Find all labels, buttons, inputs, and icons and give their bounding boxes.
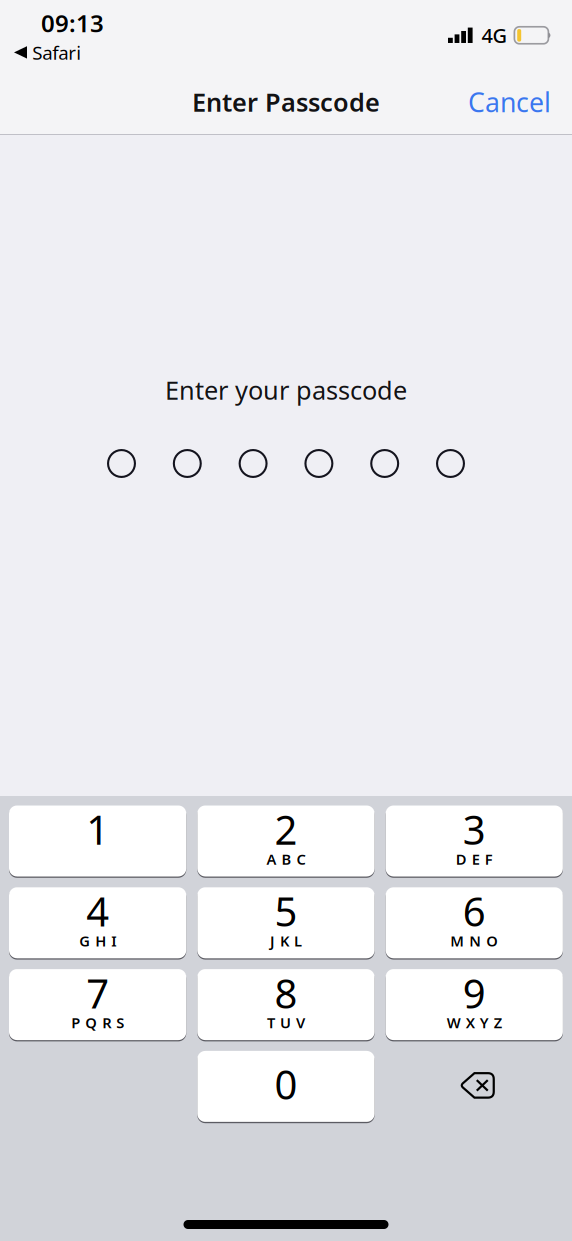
staticText: 9: [463, 966, 486, 1019]
button[interactable]: 3: [386, 805, 563, 876]
staticText: 3: [463, 803, 486, 856]
staticText: 4G: [481, 22, 507, 49]
staticText: 7: [86, 966, 109, 1019]
button[interactable]: 8: [197, 969, 375, 1040]
staticText: M N O: [450, 931, 498, 951]
staticText: Enter Passcode: [192, 85, 380, 119]
button[interactable]: Cancel: [454, 74, 565, 130]
button[interactable]: 6: [386, 887, 563, 958]
staticText: A B C: [266, 849, 305, 869]
staticText: 8: [274, 966, 297, 1019]
staticText: P Q R S: [71, 1013, 124, 1032]
button[interactable]: 9: [386, 969, 563, 1040]
staticText: J K L: [270, 931, 302, 951]
staticText: 0: [274, 1057, 297, 1110]
staticText: D E F: [456, 849, 493, 869]
button[interactable]: 1: [9, 805, 186, 876]
button[interactable]: Delete: [386, 1051, 563, 1122]
staticText: Enter your passcode: [165, 373, 407, 407]
button[interactable]: 2: [197, 805, 375, 876]
staticText: Safari: [32, 40, 81, 65]
button[interactable]: 7: [9, 969, 186, 1040]
staticText: 09:13: [41, 7, 104, 39]
button[interactable]: Back to Safari: [14, 37, 81, 68]
staticText: T U V: [267, 1013, 305, 1032]
button[interactable]: 5: [197, 887, 375, 958]
staticText: W X Y Z: [447, 1013, 502, 1032]
staticText: Cancel: [468, 84, 551, 120]
staticText: 6: [463, 884, 486, 938]
button[interactable]: 4: [9, 887, 186, 958]
button[interactable]: 0: [197, 1051, 375, 1122]
staticText: 5: [274, 884, 297, 938]
staticText: 4: [86, 884, 109, 938]
staticText: 1: [86, 803, 109, 856]
staticText: 2: [274, 803, 297, 856]
staticText: G H I: [79, 931, 116, 951]
